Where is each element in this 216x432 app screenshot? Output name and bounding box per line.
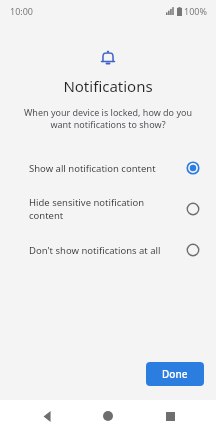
other: Notifications [99, 49, 117, 67]
button[interactable]: Don't show notifications at all [0, 231, 216, 269]
button[interactable]: Recent apps [155, 401, 185, 431]
staticText: 100% [184, 5, 207, 17]
staticText: Don't show notifications at all [29, 244, 178, 257]
staticText: Show all notification content [29, 162, 178, 175]
button[interactable]: Home [93, 401, 123, 431]
staticText: Notifications [63, 76, 153, 96]
button[interactable]: Show all notification content [0, 149, 216, 187]
button[interactable]: Hide sensitive notification content [0, 187, 216, 231]
staticText: Hide sensitive notification content [29, 196, 178, 222]
staticText: 10:00 [10, 5, 34, 17]
staticText: Done [162, 367, 188, 381]
button[interactable]: Done [146, 362, 204, 386]
button[interactable]: Back [32, 401, 62, 431]
staticText: When your device is locked, how do you w… [16, 106, 200, 131]
